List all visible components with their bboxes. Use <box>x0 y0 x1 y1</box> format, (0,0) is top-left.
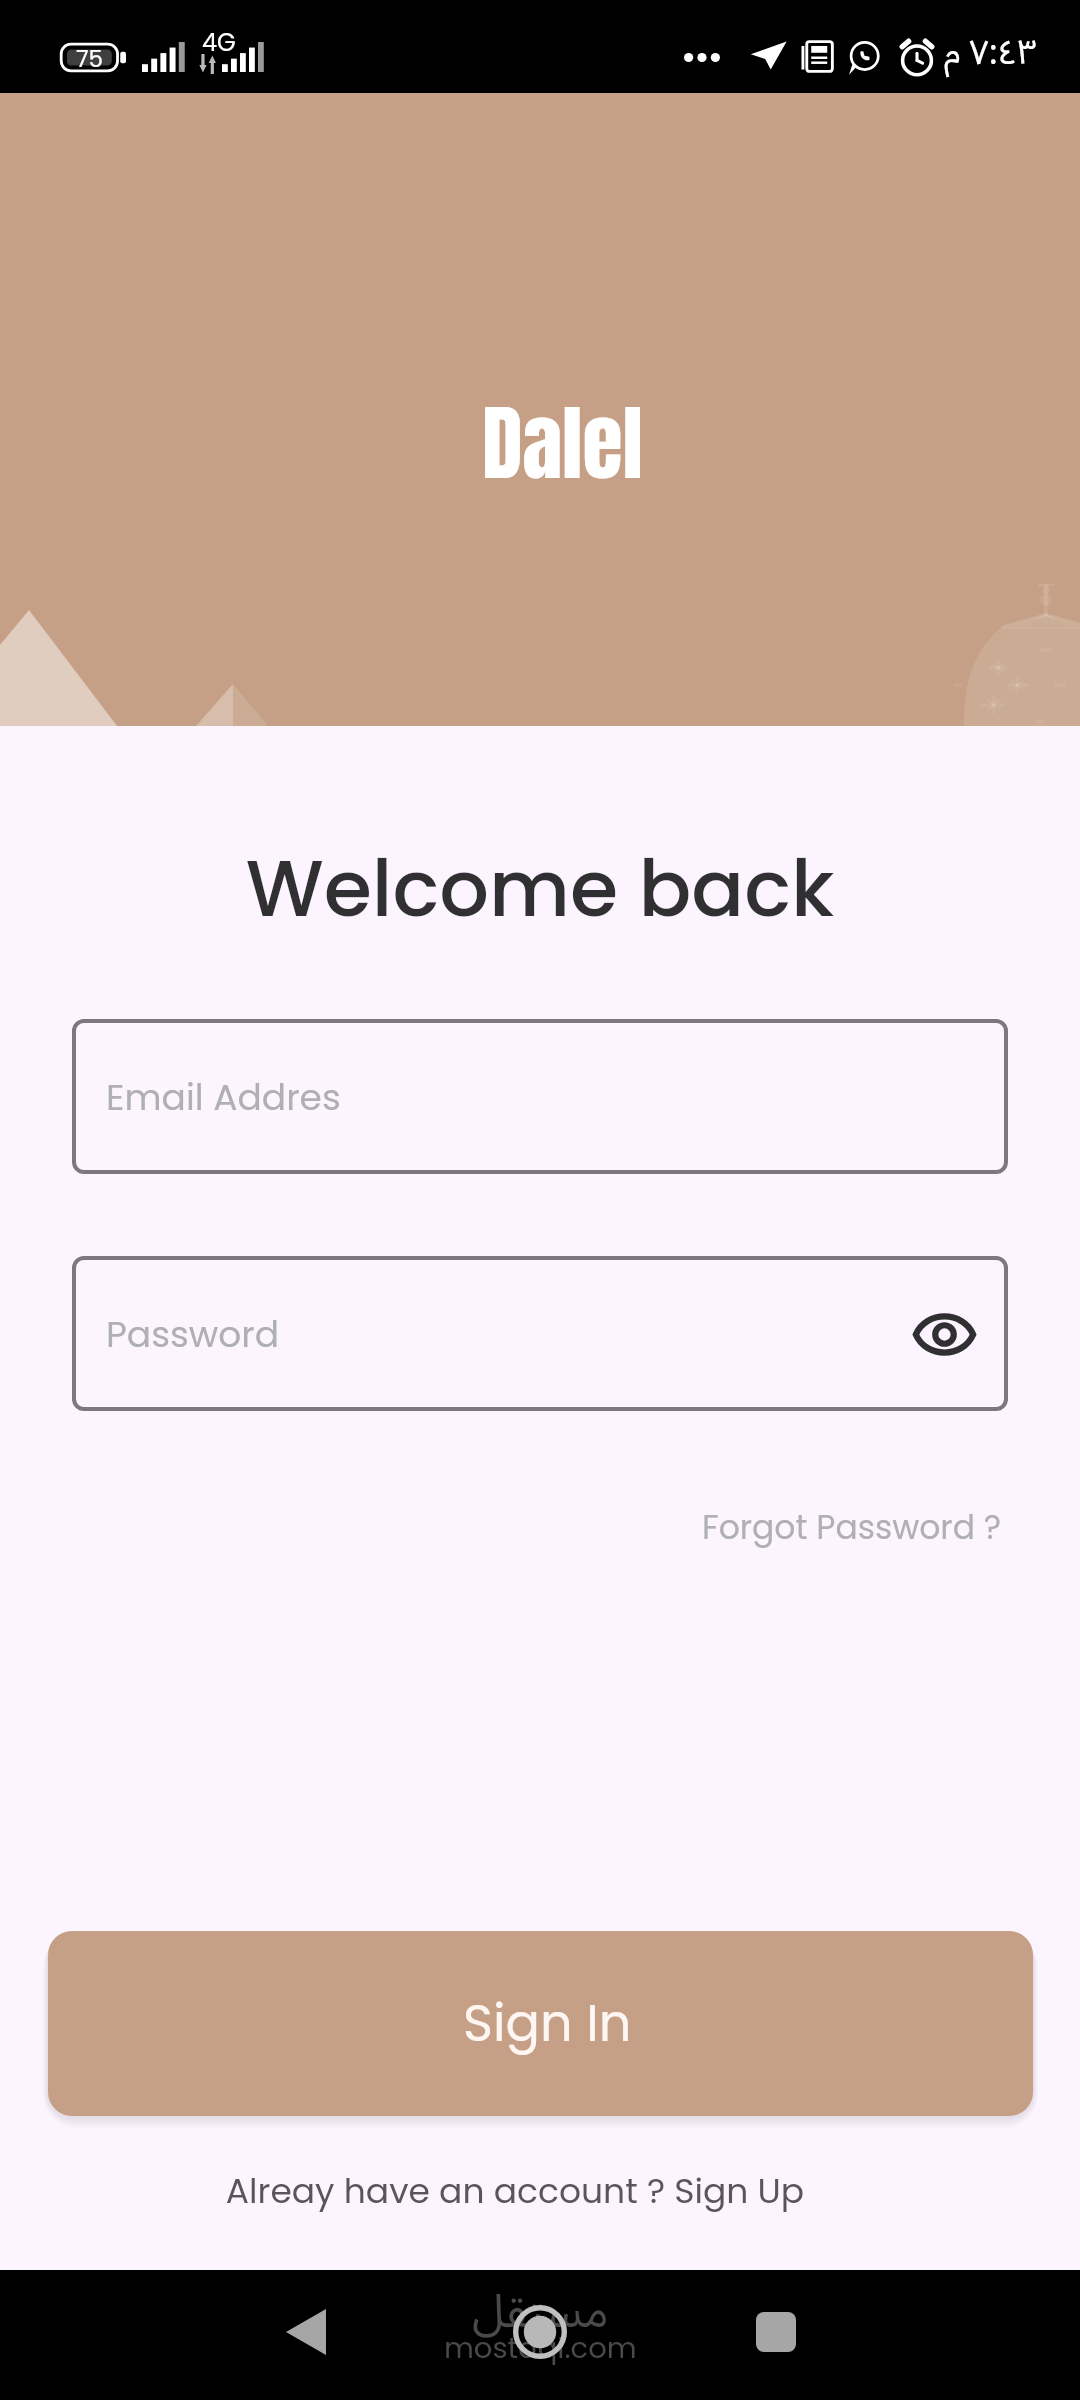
staticText: Sign In <box>463 1987 632 2058</box>
staticText: mostaql.com <box>444 2328 637 2369</box>
button[interactable]: Sign In <box>48 1931 1033 2116</box>
button[interactable]: Forgot Password ? <box>702 1504 1002 1550</box>
staticText: م ‭٧:٤٣‬ <box>944 17 1037 89</box>
staticText: Password <box>106 1309 280 1359</box>
button[interactable]: Recents <box>740 2296 812 2368</box>
button[interactable]: Alreay have an account ? Sign Up <box>0 2167 1055 2215</box>
staticText: Dalel <box>482 382 643 505</box>
button[interactable]: Password <box>72 1256 1008 1411</box>
staticText: 75 <box>76 43 104 72</box>
staticText: مستقل <box>472 2264 609 2361</box>
button[interactable]: Home <box>502 2294 578 2370</box>
button[interactable]: Back <box>270 2296 342 2368</box>
button[interactable]: Email Addres <box>72 1019 1008 1174</box>
staticText: Welcome back <box>0 834 1080 943</box>
button[interactable]: Show password <box>906 1296 982 1372</box>
staticText: 4G <box>202 26 236 60</box>
staticText: Email Addres <box>106 1072 341 1122</box>
